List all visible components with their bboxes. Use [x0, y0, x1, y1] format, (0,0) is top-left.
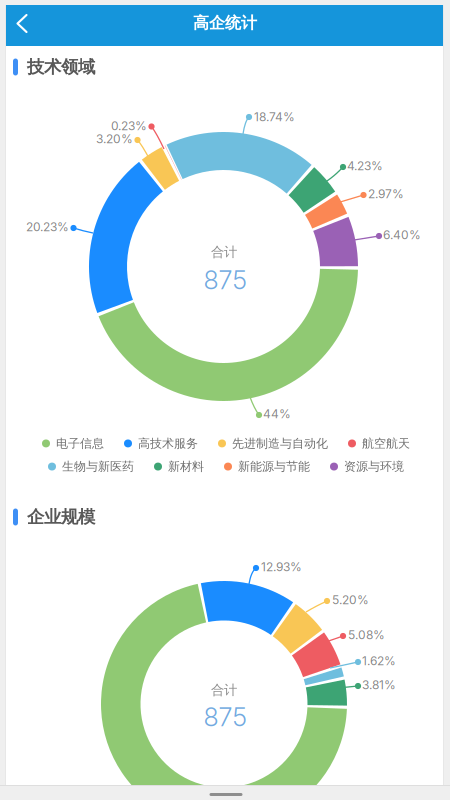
staticText: 航空航天: [362, 436, 410, 451]
staticText: 合计: [211, 682, 237, 698]
staticText: 0.23%: [111, 119, 147, 133]
staticText: 电子信息: [56, 436, 104, 451]
staticText: 先进制造与自动化: [232, 436, 328, 451]
staticText: 5.08%: [348, 628, 385, 642]
staticText: 合计: [211, 244, 237, 260]
staticText: 875: [203, 702, 246, 732]
staticText: 2.97%: [368, 187, 404, 201]
staticText: 5.20%: [332, 593, 369, 607]
staticText: 新能源与节能: [238, 459, 310, 474]
staticText: 高技术服务: [138, 436, 198, 451]
staticText: 20.23%: [26, 220, 69, 234]
staticText: 1.62%: [362, 654, 396, 668]
staticText: 生物与新医药: [62, 459, 134, 474]
staticText: 高企统计: [193, 13, 257, 33]
staticText: 企业规模: [27, 506, 95, 528]
staticText: 技术领域: [27, 56, 95, 78]
staticText: 新材料: [168, 459, 204, 474]
staticText: 3.81%: [362, 678, 396, 692]
staticText: 875: [203, 265, 246, 295]
staticText: 资源与环境: [344, 459, 404, 474]
staticText: 18.74%: [254, 110, 295, 124]
staticText: 4.23%: [347, 159, 383, 173]
staticText: 3.20%: [96, 132, 133, 146]
button[interactable]: Back: [0, 0, 46, 46]
staticText: 44%: [263, 407, 291, 421]
staticText: 12.93%: [261, 560, 302, 574]
staticText: 6.40%: [383, 228, 421, 242]
